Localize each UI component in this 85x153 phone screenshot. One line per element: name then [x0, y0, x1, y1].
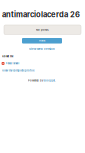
- button[interactable]: View my complete profile: [2, 69, 34, 72]
- staticText: No posts.: [36, 28, 49, 31]
- staticText: View my complete profile: [2, 69, 34, 72]
- staticText: About me: [2, 55, 13, 58]
- button[interactable]: Home: [22, 38, 62, 43]
- staticText: .: [55, 79, 56, 82]
- staticText: Home: [39, 39, 45, 42]
- staticText: Powered by: [28, 79, 44, 82]
- staticText: View web version: [29, 47, 55, 51]
- staticText: Blogger: [44, 79, 55, 82]
- staticText: Pessy Israeli: [6, 62, 20, 65]
- staticText: antimarciolacerda 26: [2, 10, 80, 19]
- button[interactable]: View web version: [29, 47, 55, 51]
